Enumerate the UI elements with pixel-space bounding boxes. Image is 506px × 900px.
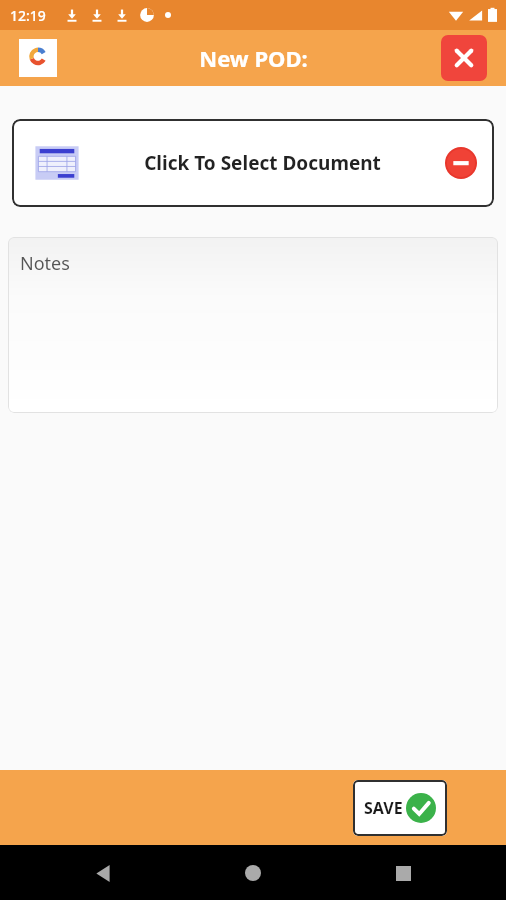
button[interactable]: Click To Select Document <box>12 119 494 207</box>
staticText: Notes <box>20 251 70 276</box>
button[interactable]: App logo <box>19 39 57 77</box>
button[interactable]: Close <box>441 35 487 81</box>
button[interactable]: Recent apps <box>384 854 422 892</box>
button[interactable]: SAVE <box>353 780 447 836</box>
button[interactable]: Back <box>84 854 122 892</box>
staticText: 12:19 <box>10 6 46 25</box>
staticText: Click To Select Document <box>144 150 381 176</box>
button[interactable]: Remove document <box>440 142 482 184</box>
staticText: New POD: <box>199 43 308 73</box>
button[interactable]: Notes <box>8 237 498 413</box>
button[interactable]: Home <box>234 854 272 892</box>
staticText: SAVE <box>364 797 403 819</box>
